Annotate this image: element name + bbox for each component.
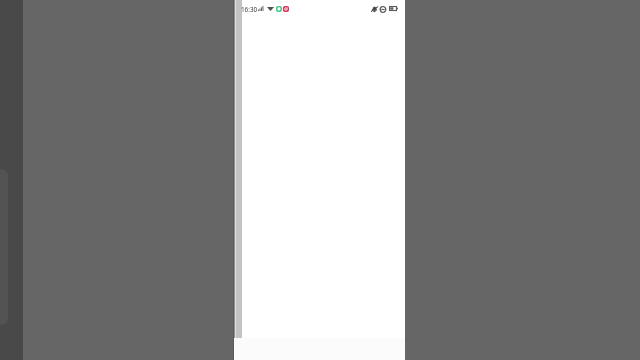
button[interactable]: Wi-Fi: [267, 6, 274, 11]
button[interactable]: WhatsApp notification: [276, 6, 282, 12]
other: Do not disturb: [379, 6, 387, 13]
button[interactable]: Mobile signal: [258, 6, 264, 11]
button[interactable]: Instagram notification: [283, 6, 289, 12]
button[interactable]: Do not disturb: [379, 6, 387, 13]
button[interactable]: Silent mode: [371, 6, 378, 12]
other: Silent mode: [371, 6, 378, 12]
button[interactable]: Battery: [389, 6, 398, 11]
button[interactable]: 16:30: [241, 5, 258, 14]
staticText: 16:30: [241, 5, 258, 14]
